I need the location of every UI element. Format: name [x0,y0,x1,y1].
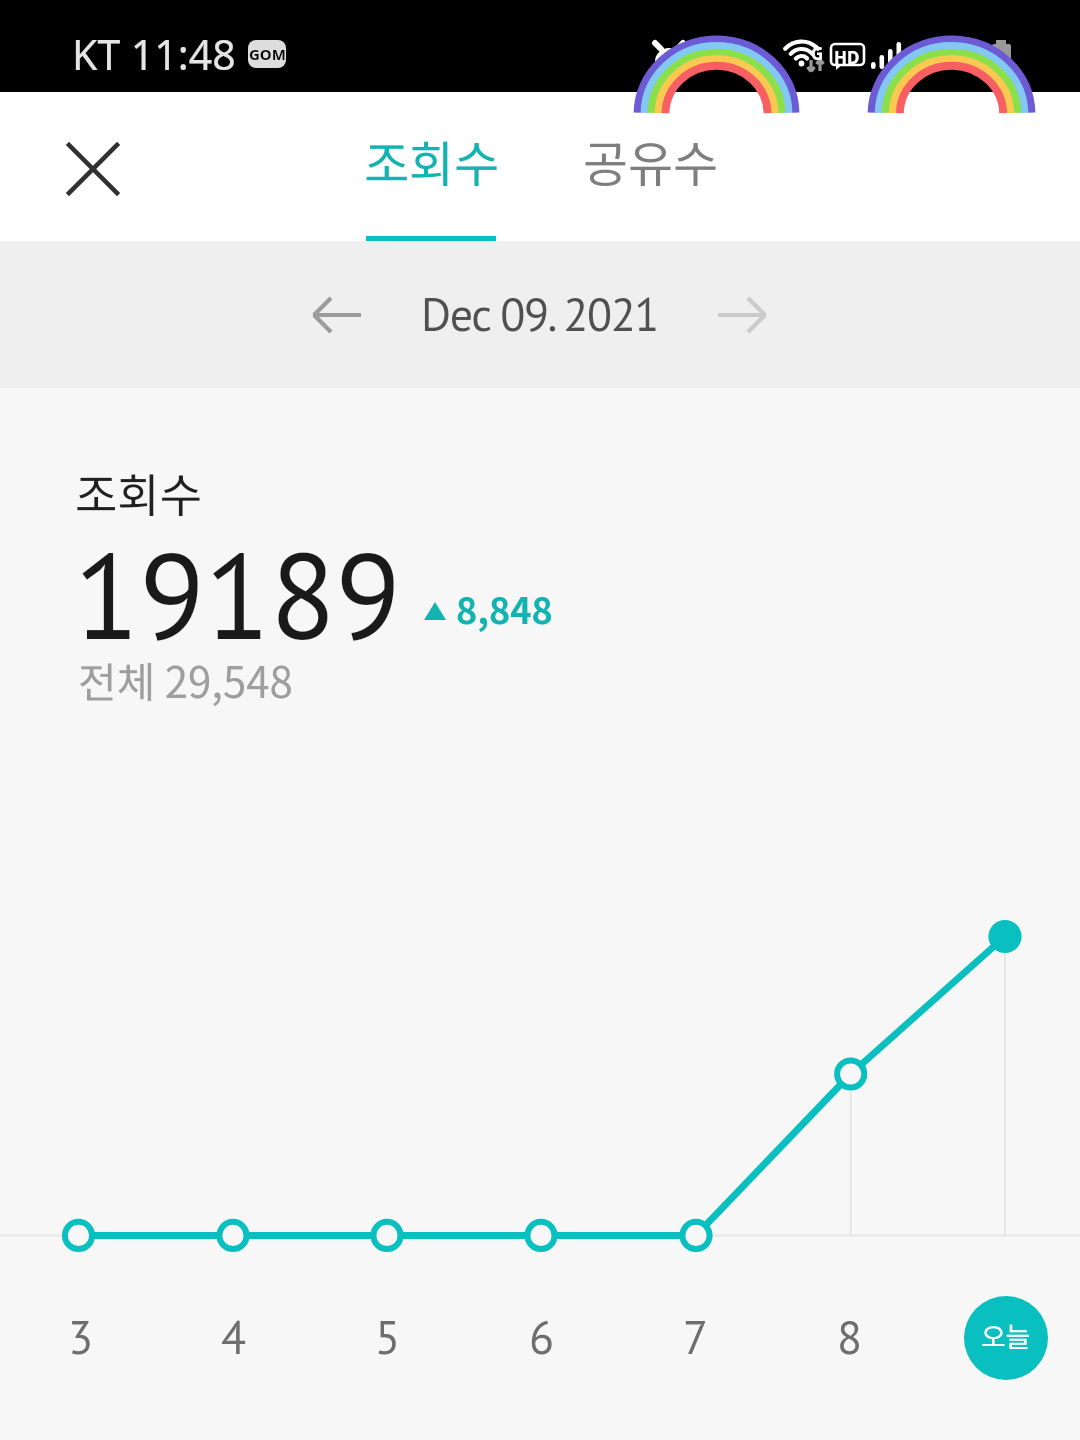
button[interactable]: 조회수 [334,92,530,241]
staticText: 3 [68,1307,94,1367]
staticText: 오늘 [981,1316,1031,1355]
staticText: 공유수 [583,125,719,196]
button[interactable]: 6 [502,1307,582,1367]
button[interactable]: 3 [41,1307,121,1367]
staticText: 6 [529,1307,555,1367]
staticText: KT 11:48 [72,26,236,82]
button[interactable]: 공유수 [553,92,749,241]
button[interactable]: 오늘 [964,1296,1048,1380]
staticText: 7 [683,1307,709,1367]
staticText: 4 [221,1307,247,1367]
staticText: 8 [837,1307,863,1367]
staticText: 조회수 [364,125,500,196]
staticText: 19189 [74,517,401,672]
staticText: 전체 29,548 [78,649,293,710]
button[interactable]: 7 [656,1307,736,1367]
staticText: G [811,42,824,65]
button[interactable]: 8 [810,1307,890,1367]
button[interactable]: Next day [696,269,788,361]
staticText: Dec 09. 2021 [421,284,659,344]
staticText: 조회수 [75,459,202,526]
button[interactable]: 5 [348,1307,428,1367]
staticText: GOM [249,44,286,64]
staticText: 5 [375,1307,401,1367]
staticText: 8,848 [456,582,553,634]
button[interactable]: Close [45,121,141,217]
button[interactable]: Previous day [291,269,383,361]
staticText: HD [834,46,860,69]
button[interactable]: 4 [194,1307,274,1367]
